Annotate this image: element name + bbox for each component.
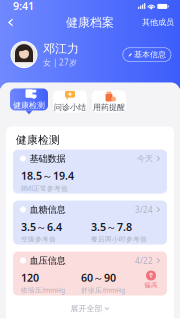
staticText: 9:41	[13, 0, 34, 13]
staticText: 邓江力	[43, 41, 79, 56]
staticText: 健康档案	[66, 15, 114, 30]
button[interactable]: 血糖信息	[13, 201, 167, 245]
staticText: 120	[21, 270, 39, 285]
staticText: 60～90	[81, 270, 116, 285]
staticText: 女 | 27岁	[43, 57, 77, 68]
staticText: 展开全部	[70, 304, 102, 313]
staticText: 收缩压/mmHg	[21, 286, 65, 295]
staticText: 其他成员	[142, 17, 174, 27]
staticText: 18.5～19.4	[21, 168, 74, 183]
staticText: 餐后两小时参考值	[91, 235, 147, 243]
button[interactable]: 血压信息	[13, 252, 167, 296]
staticText: 健康检测	[16, 133, 60, 146]
staticText: 4/22	[135, 255, 153, 266]
staticText: 血糖信息	[29, 204, 65, 215]
staticText: 基础数据	[29, 153, 65, 164]
button[interactable]: 展开全部	[13, 303, 167, 315]
staticText: 血压信息	[29, 255, 65, 266]
staticText: BMI正常参考值	[21, 184, 68, 193]
staticText: 空腹参考值	[21, 235, 56, 243]
staticText: 3.5～6.4	[21, 220, 62, 234]
staticText: 3/24	[135, 204, 153, 215]
button[interactable]: 其他成员	[132, 12, 180, 32]
staticText: 偏高	[144, 281, 158, 289]
staticText: 健康检测	[13, 100, 45, 110]
staticText: 用药提醒	[93, 102, 125, 112]
staticText: 3.5～7.8	[91, 220, 132, 234]
staticText: 今天	[137, 154, 153, 163]
button[interactable]: 健康检测	[10, 88, 48, 114]
staticText: 舒张压/mmHg	[81, 286, 125, 295]
button[interactable]: 返回	[0, 13, 25, 31]
staticText: 基本信息	[134, 50, 166, 59]
button[interactable]: 基础数据	[13, 150, 167, 194]
button[interactable]: 基本信息	[123, 48, 171, 61]
button[interactable]: 问诊小结	[53, 90, 87, 112]
staticText: 问诊小结	[54, 102, 86, 112]
button[interactable]: 用药提醒	[92, 90, 126, 112]
